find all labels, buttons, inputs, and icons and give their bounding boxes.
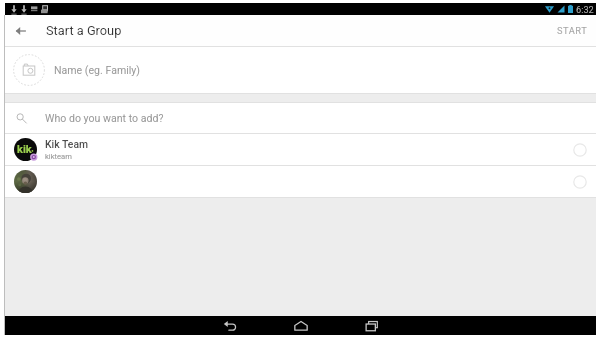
- button[interactable]: Select: [5, 166, 596, 197]
- staticText: 6:32: [576, 4, 594, 15]
- button[interactable]: kik: [5, 134, 596, 165]
- button[interactable]: Home: [289, 316, 313, 335]
- button[interactable]: Search: [5, 103, 596, 133]
- button[interactable]: START: [549, 19, 596, 42]
- button[interactable]: Select: [568, 170, 592, 194]
- staticText: Who do you want to add?: [45, 112, 164, 124]
- staticText: Kik Team: [45, 138, 89, 150]
- button[interactable]: Recent apps: [360, 316, 384, 335]
- staticText: START: [557, 25, 588, 36]
- staticText: Start a Group: [46, 23, 122, 38]
- other: Search: [14, 111, 28, 125]
- button[interactable]: Name (eg. Family): [5, 47, 596, 93]
- button[interactable]: Select: [568, 138, 592, 162]
- button[interactable]: Back: [218, 316, 242, 335]
- button[interactable]: Navigate up: [10, 20, 32, 42]
- staticText: kikteam: [45, 152, 72, 161]
- staticText: kik: [17, 143, 32, 156]
- staticText: Name (eg. Family): [54, 64, 141, 76]
